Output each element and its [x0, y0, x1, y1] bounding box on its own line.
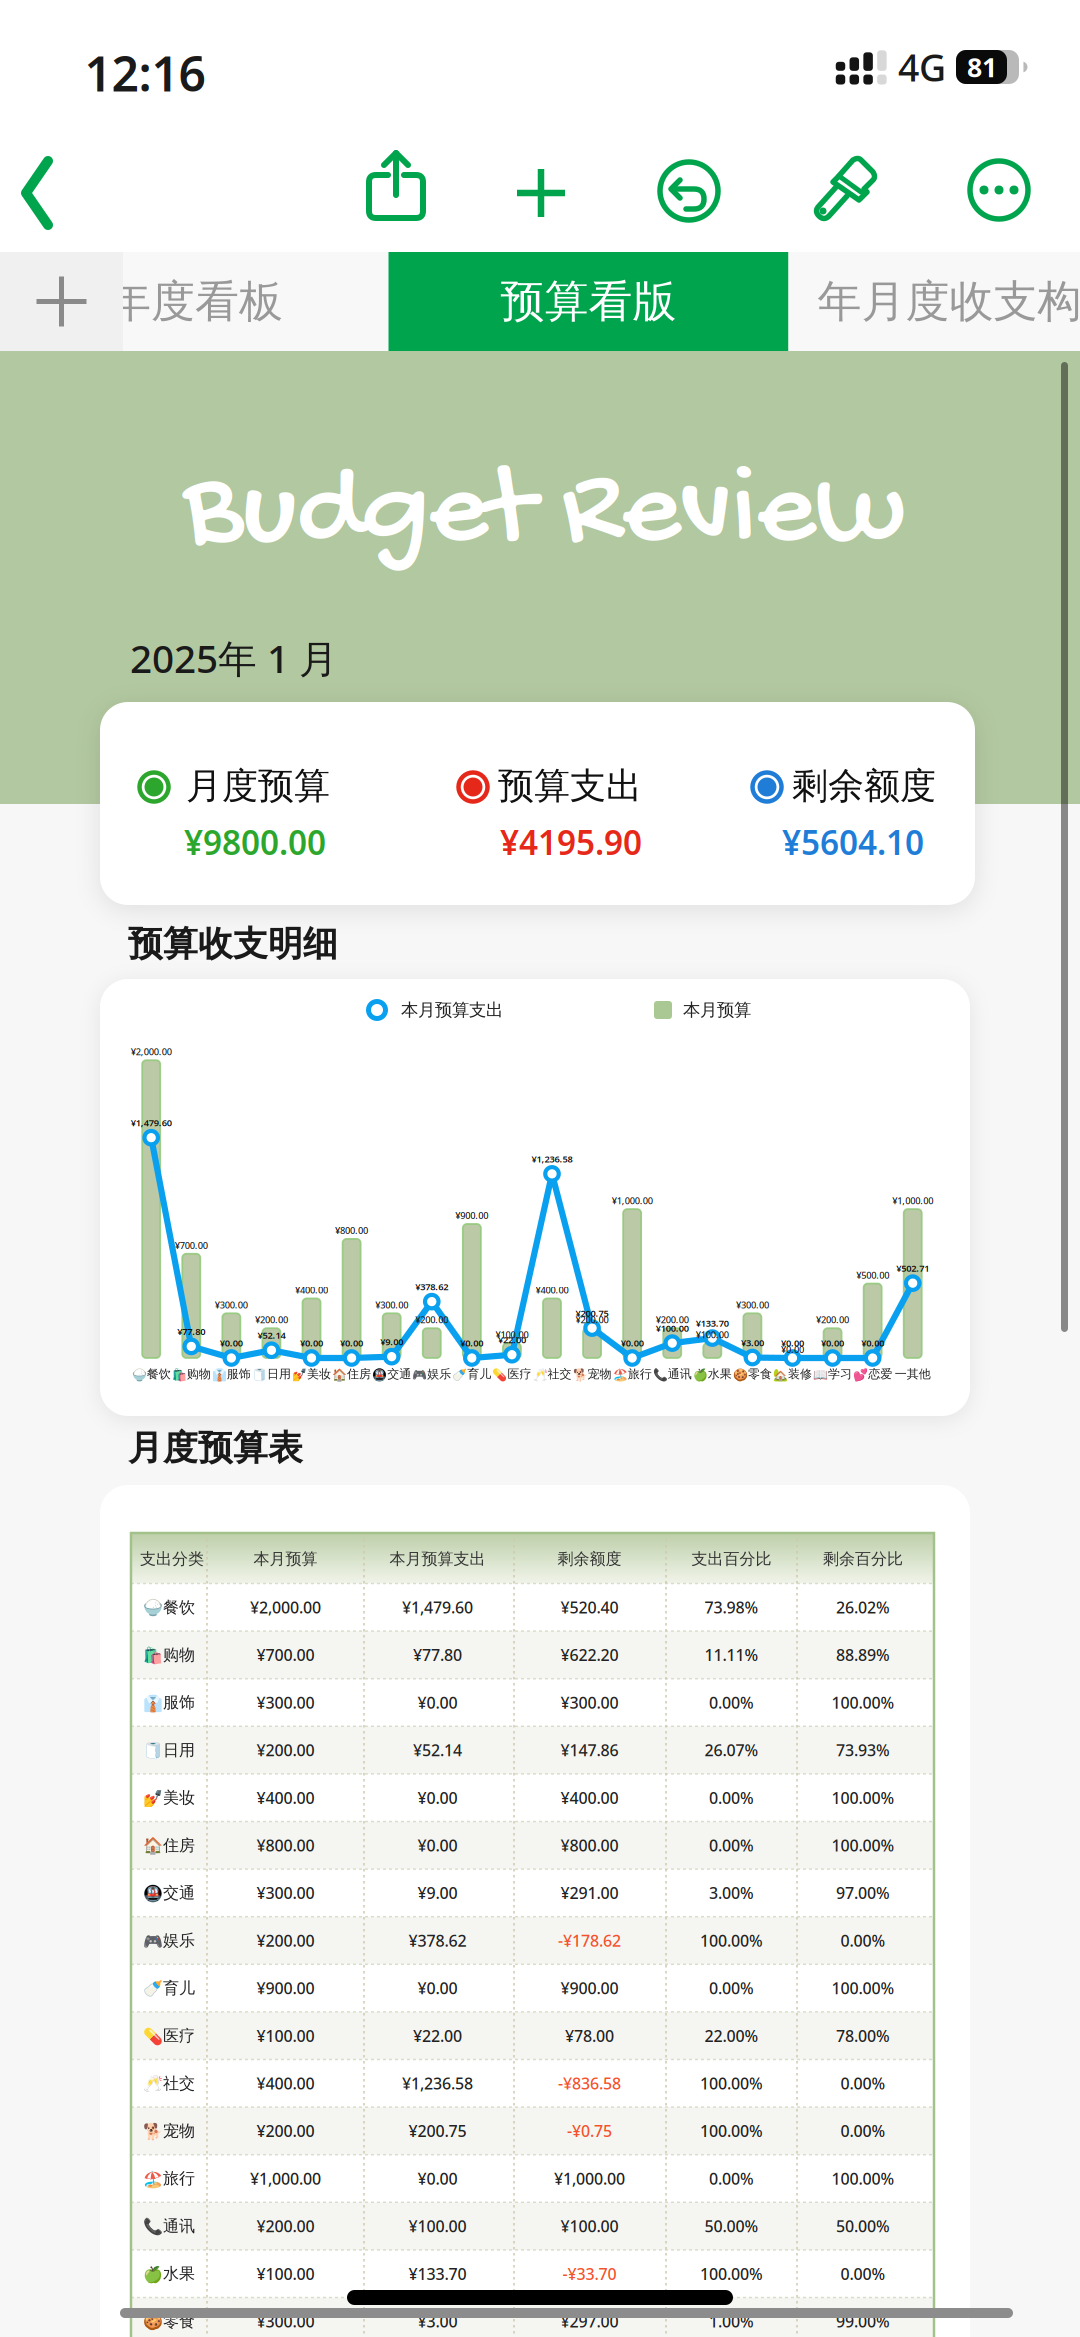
staticText: 🛍️购物	[172, 1367, 211, 1381]
staticText: ¥900.00	[256, 1977, 314, 1999]
staticText: ¥22.00	[498, 1333, 526, 1346]
staticText: 支出分类	[140, 1549, 204, 1569]
staticText: 💊医疗	[492, 1367, 531, 1381]
staticText: ¥52.14	[257, 1329, 285, 1341]
staticText: ¥297.00	[560, 2311, 618, 2332]
staticText: ¥200.75	[408, 2120, 466, 2141]
staticText: 99.00%	[836, 2311, 890, 2332]
staticText: 🏠住房	[332, 1367, 371, 1381]
staticText: 12:16	[84, 41, 205, 105]
staticText: ¥9.00	[380, 1335, 403, 1348]
staticText: 剩余额度	[792, 764, 936, 808]
staticText: ¥200.00	[256, 2215, 314, 2237]
staticText: 💕恋爱	[853, 1367, 892, 1381]
staticText: ¥800.00	[560, 1835, 618, 1856]
staticText: ¥9.00	[417, 1882, 457, 1903]
staticText: ¥400.00	[256, 2073, 314, 2094]
staticText: ¥1,000.00	[554, 2168, 625, 2189]
staticText: 26.07%	[704, 1739, 758, 1761]
staticText: ¥0.00	[621, 1337, 644, 1349]
staticText: ¥520.40	[560, 1597, 618, 1618]
staticText: ¥500.00	[856, 1269, 889, 1281]
staticText: 🍪零食	[143, 2311, 195, 2331]
staticText: 月度预算	[186, 764, 330, 808]
staticText: 支出百分比	[691, 1549, 771, 1569]
staticText: 🥂社交	[143, 2073, 195, 2093]
staticText: ¥200.00	[256, 1930, 314, 1951]
staticText: ¥100.00	[495, 1328, 528, 1341]
staticText: 🐕宠物	[143, 2121, 195, 2141]
staticText: 0.00%	[709, 2168, 754, 2189]
button[interactable]: More	[968, 159, 1030, 221]
staticText: 年月度收支构	[817, 274, 1080, 328]
staticText: ¥1,236.58	[531, 1153, 572, 1165]
staticText: ¥378.62	[408, 1930, 466, 1951]
staticText: 剩余百分比	[823, 1549, 903, 1569]
staticText: ¥378.62	[415, 1280, 448, 1293]
button[interactable]: 年度看板	[123, 252, 388, 351]
button[interactable]: Share	[366, 151, 426, 225]
staticText: 👔服饰	[212, 1367, 251, 1381]
staticText: ¥200.00	[256, 2120, 314, 2141]
staticText: 0.00%	[709, 1692, 754, 1713]
staticText: ¥800.00	[256, 1835, 314, 1856]
staticText: 本月预算	[683, 999, 751, 1021]
staticText: ¥2,000.00	[250, 1597, 321, 1618]
button[interactable]: 年月度收支构	[788, 252, 1080, 351]
button[interactable]: 预算看版	[388, 252, 788, 351]
staticText: ¥100.00	[696, 1328, 729, 1341]
staticText: 🍚餐饮	[132, 1367, 171, 1381]
staticText: ¥200.00	[576, 1313, 609, 1326]
staticText: 0.00%	[840, 2073, 885, 2094]
staticText: 81	[967, 49, 997, 85]
staticText: 🍼育儿	[452, 1367, 491, 1381]
button[interactable]: Undo	[658, 160, 720, 222]
button[interactable]: New sheet	[0, 252, 123, 351]
staticText: 🥂社交	[532, 1367, 571, 1381]
staticText: 0.00%	[840, 2120, 885, 2141]
staticText: ¥300.00	[375, 1299, 408, 1311]
staticText: ¥300.00	[560, 1692, 618, 1713]
staticText: 11.11%	[704, 1644, 758, 1665]
button[interactable]: Add	[517, 169, 565, 217]
staticText: -¥33.70	[562, 2263, 616, 2284]
staticText: 100.00%	[831, 1692, 894, 1713]
staticText: ¥52.14	[413, 1739, 462, 1761]
staticText: ¥1,000.00	[892, 1194, 933, 1207]
staticText: ¥300.00	[736, 1299, 769, 1311]
staticText: ¥200.00	[256, 1739, 314, 1761]
staticText: 100.00%	[831, 2168, 894, 2189]
staticText: ¥1,236.58	[402, 2073, 473, 2094]
staticText: 本月预算支出	[389, 1549, 485, 1569]
staticText: 4G	[898, 42, 946, 92]
staticText: 🚇交通	[372, 1367, 411, 1381]
staticText: 🍪零食	[733, 1367, 772, 1381]
staticText: 88.89%	[836, 1644, 890, 1665]
staticText: 🏠住房	[143, 1835, 195, 1855]
button[interactable]: Back	[24, 155, 58, 231]
staticText: 🧻日用	[143, 1740, 195, 1760]
staticText: 100.00%	[700, 2263, 763, 2284]
staticText: ¥0.00	[821, 1337, 844, 1349]
staticText: 22.00%	[704, 2025, 758, 2046]
staticText: ¥0.00	[417, 1692, 457, 1713]
staticText: 一其他	[895, 1367, 931, 1381]
staticText: ¥3.00	[417, 2311, 457, 2332]
staticText: 1.00%	[709, 2311, 754, 2332]
staticText: Budget Review	[183, 447, 904, 583]
staticText: 预算支出	[498, 764, 642, 808]
staticText: 月度预算表	[128, 1427, 303, 1469]
staticText: -¥836.58	[558, 2073, 621, 2094]
staticText: ¥0.00	[861, 1337, 884, 1349]
staticText: ¥9800.00	[184, 820, 326, 864]
staticText: 本月预算	[253, 1549, 317, 1569]
staticText: ¥1,479.60	[402, 1597, 473, 1618]
staticText: ¥400.00	[560, 1787, 618, 1808]
staticText: 100.00%	[700, 1930, 763, 1951]
staticText: ¥800.00	[335, 1224, 368, 1237]
staticText: ¥700.00	[256, 1644, 314, 1665]
staticText: 🧻日用	[252, 1367, 291, 1381]
staticText: 50.00%	[704, 2215, 758, 2237]
button[interactable]: Format	[809, 156, 879, 226]
staticText: 🍚餐饮	[143, 1597, 195, 1617]
